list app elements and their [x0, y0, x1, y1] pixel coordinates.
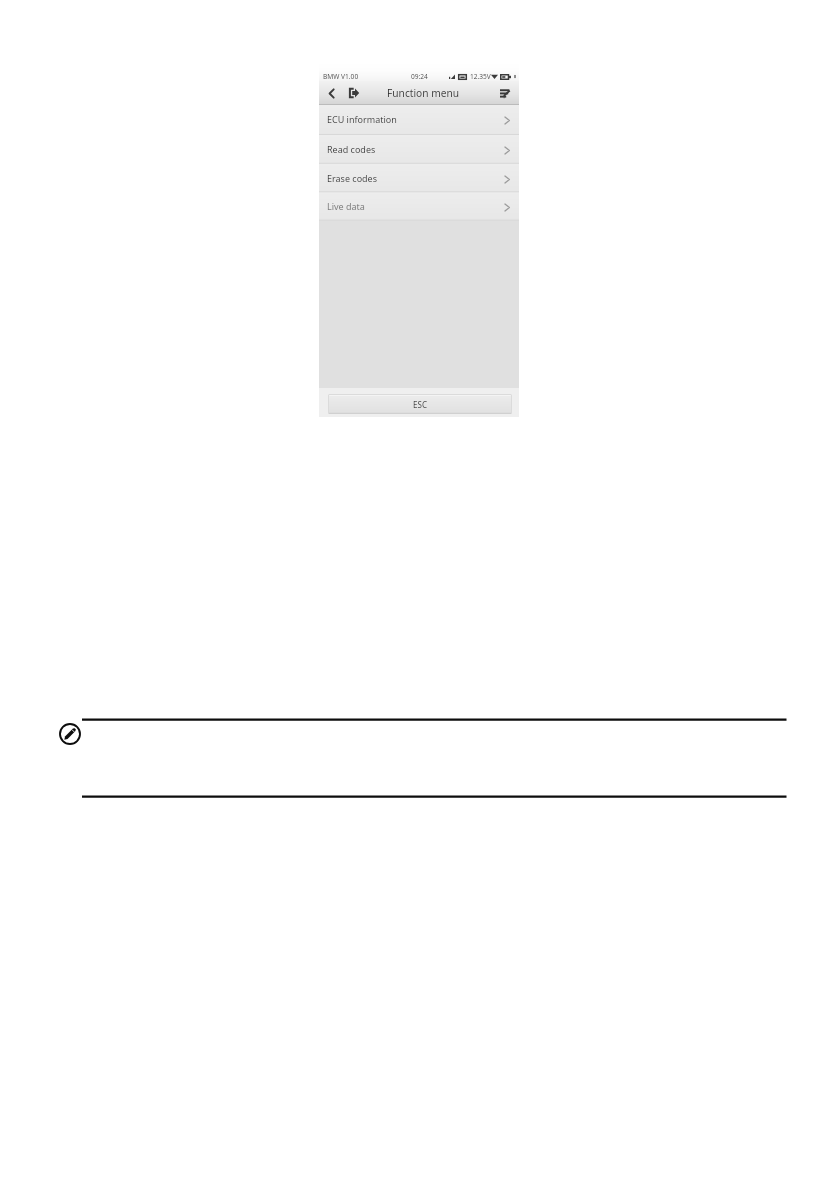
- staticText: ECU information: [327, 113, 397, 125]
- staticText: Erase codes: [327, 172, 378, 184]
- staticText: 09:24: [411, 72, 428, 81]
- button[interactable]: Live data: [319, 192, 519, 220]
- button[interactable]: Menu: [495, 82, 515, 104]
- button[interactable]: Edit: [59, 723, 81, 745]
- staticText: BMW V1.00: [323, 72, 359, 81]
- button[interactable]: Exit: [343, 82, 365, 104]
- button[interactable]: ECU information: [319, 105, 519, 135]
- button[interactable]: Back: [321, 82, 339, 104]
- button[interactable]: Read codes: [319, 135, 519, 164]
- button[interactable]: ESC: [328, 394, 512, 414]
- staticText: Read codes: [327, 143, 376, 155]
- button[interactable]: Erase codes: [319, 164, 519, 193]
- staticText: ESC: [413, 399, 427, 410]
- staticText: Function menu: [387, 86, 460, 100]
- staticText: Live data: [327, 200, 365, 212]
- staticText: 12.35V: [470, 72, 491, 81]
